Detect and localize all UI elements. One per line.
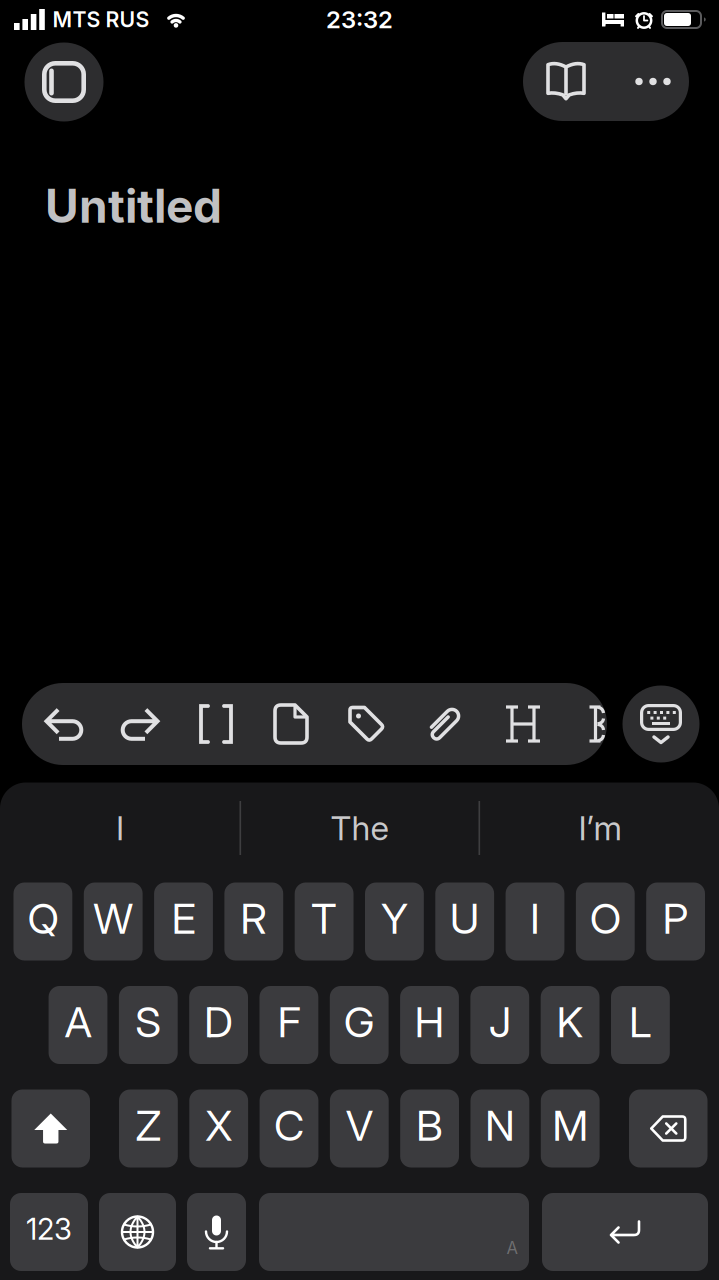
button[interactable]: D	[189, 986, 248, 1064]
staticText: N	[485, 1100, 515, 1151]
staticText: D	[204, 997, 233, 1047]
button[interactable]: Z	[119, 1089, 178, 1167]
staticText: Q	[27, 893, 58, 944]
button[interactable]: Heading	[490, 685, 556, 763]
button[interactable]: New note	[258, 685, 324, 763]
staticText: 123	[26, 1211, 72, 1247]
button[interactable]: C	[260, 1089, 318, 1167]
button[interactable]: Y	[365, 882, 424, 960]
button[interactable]: Space	[259, 1193, 529, 1271]
staticText: J	[489, 997, 511, 1047]
button[interactable]: I	[506, 882, 564, 960]
button[interactable]: A	[49, 986, 107, 1064]
button[interactable]: B	[400, 1089, 459, 1167]
button[interactable]: The	[244, 798, 474, 858]
button[interactable]: O	[576, 882, 635, 960]
staticText: K	[557, 997, 584, 1047]
staticText: A	[506, 1238, 517, 1258]
staticText: L	[629, 997, 652, 1047]
button[interactable]: H	[400, 986, 459, 1064]
button[interactable]: G	[330, 986, 389, 1064]
button[interactable]: Q	[13, 882, 72, 960]
button[interactable]: Attach	[411, 685, 477, 763]
button[interactable]: More options	[611, 42, 694, 121]
button[interactable]: T	[295, 882, 353, 960]
staticText: V	[346, 1100, 373, 1151]
button[interactable]: I’m	[485, 798, 715, 858]
staticText: 23:32	[326, 5, 393, 34]
button[interactable]: Shift	[11, 1089, 90, 1167]
staticText: X	[205, 1100, 232, 1151]
button[interactable]: F	[259, 986, 318, 1064]
button[interactable]: P	[646, 882, 705, 960]
button[interactable]: Show sidebar	[24, 42, 103, 121]
button[interactable]: W	[84, 882, 143, 960]
staticText: Z	[135, 1100, 161, 1151]
staticText: I’m	[578, 808, 621, 848]
staticText: U	[450, 893, 480, 944]
button[interactable]: N	[470, 1089, 529, 1167]
staticText: O	[590, 893, 621, 944]
button[interactable]: R	[224, 882, 283, 960]
button[interactable]: I	[5, 798, 235, 858]
button[interactable]: Reader view	[524, 42, 607, 121]
staticText: E	[171, 893, 195, 944]
staticText: G	[344, 997, 375, 1047]
button[interactable]: Brackets	[183, 685, 249, 763]
staticText: F	[277, 997, 300, 1047]
staticText: A	[64, 997, 91, 1047]
staticText: S	[135, 997, 161, 1047]
button[interactable]: Dismiss keyboard	[622, 685, 699, 762]
staticText: R	[240, 893, 267, 944]
staticText: The	[330, 808, 388, 848]
button[interactable]: Tag	[334, 685, 400, 763]
staticText: C	[274, 1100, 304, 1151]
button[interactable]: J	[470, 986, 529, 1064]
button[interactable]: Delete	[629, 1089, 707, 1167]
staticText: W	[93, 893, 133, 944]
button[interactable]: 123	[10, 1193, 88, 1271]
button[interactable]: Return	[542, 1193, 708, 1271]
staticText: P	[663, 893, 689, 944]
button[interactable]: Bold	[583, 685, 609, 763]
staticText: T	[311, 893, 337, 944]
button[interactable]: Redo	[107, 685, 173, 763]
button[interactable]: V	[330, 1089, 389, 1167]
button[interactable]: K	[541, 986, 599, 1064]
staticText: M	[552, 1100, 588, 1151]
button[interactable]: X	[189, 1089, 248, 1167]
staticText: MTS RUS	[52, 7, 149, 32]
button[interactable]: Dictate	[187, 1193, 246, 1271]
staticText: H	[414, 997, 444, 1047]
button[interactable]: Next keyboard	[99, 1193, 176, 1271]
button[interactable]: L	[611, 986, 670, 1064]
button[interactable]: U	[435, 882, 494, 960]
staticText: Untitled	[45, 178, 222, 234]
staticText: I	[116, 808, 124, 848]
button[interactable]: Undo	[31, 685, 97, 763]
button[interactable]: S	[119, 986, 178, 1064]
staticText: B	[416, 1100, 443, 1151]
staticText: Y	[381, 893, 408, 944]
button[interactable]: E	[154, 882, 213, 960]
button[interactable]: M	[541, 1089, 600, 1167]
staticText: I	[530, 893, 540, 944]
